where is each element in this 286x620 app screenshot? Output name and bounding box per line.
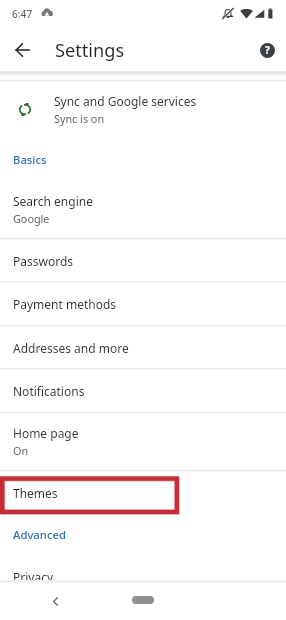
- staticText: Search engine: [13, 193, 93, 209]
- button[interactable]: Themes: [0, 471, 286, 514]
- staticText: Google: [13, 211, 50, 226]
- button[interactable]: Home: [132, 596, 154, 604]
- staticText: Notifications: [13, 383, 85, 399]
- staticText: Themes: [13, 485, 58, 501]
- button[interactable]: Search engine: [0, 179, 286, 239]
- staticText: Privacy: [13, 569, 54, 585]
- staticText: Basics: [13, 152, 47, 167]
- staticText: On: [13, 443, 29, 458]
- staticText: Addresses and more: [13, 340, 129, 356]
- staticText: Settings: [55, 38, 125, 63]
- staticText: ?: [265, 43, 270, 57]
- button[interactable]: Help and feedback: [251, 34, 283, 66]
- button[interactable]: Payment methods: [0, 282, 286, 325]
- staticText: Passwords: [13, 253, 74, 269]
- button[interactable]: Addresses and more: [0, 326, 286, 369]
- button[interactable]: Passwords: [0, 239, 286, 282]
- staticText: Advanced: [13, 527, 66, 542]
- button[interactable]: Notifications: [0, 369, 286, 412]
- staticText: Payment methods: [13, 296, 117, 312]
- button[interactable]: Back: [43, 589, 67, 613]
- button[interactable]: Privacy: [0, 555, 286, 598]
- button[interactable]: Sync and Google services: [0, 81, 286, 140]
- staticText: 6:47: [12, 7, 33, 21]
- staticText: Sync and Google services: [54, 93, 197, 109]
- button[interactable]: Navigate up: [6, 34, 38, 66]
- staticText: Sync is on: [54, 111, 105, 126]
- button[interactable]: Home page: [0, 413, 286, 470]
- staticText: Home page: [13, 425, 79, 441]
